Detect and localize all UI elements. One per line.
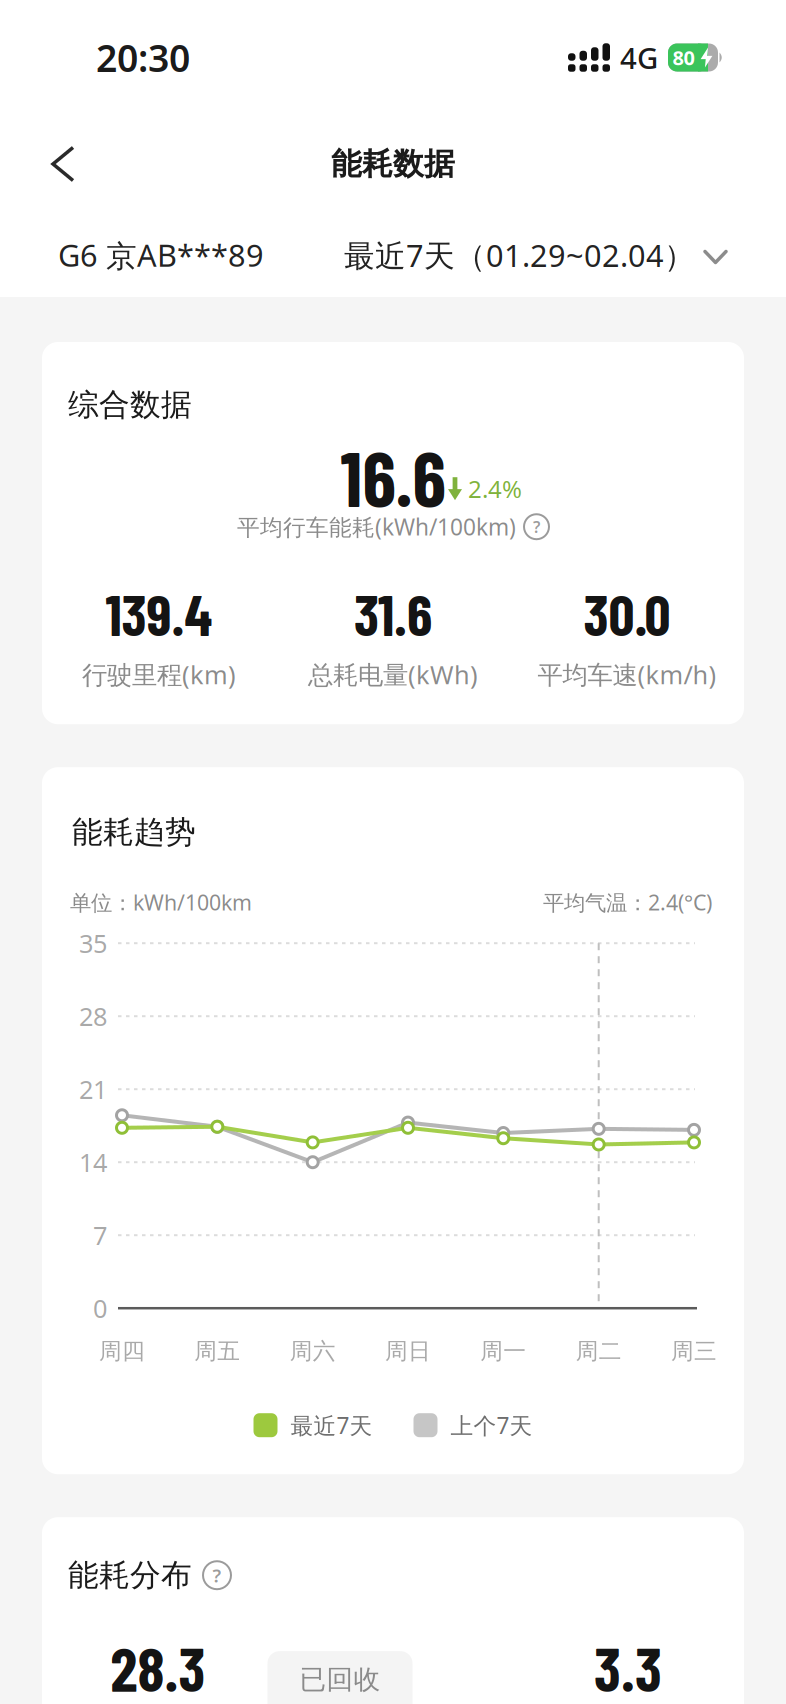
staticText: 80 [672, 44, 694, 71]
staticText: 能耗分布 [68, 1556, 192, 1594]
staticText: 28.3 [110, 1630, 205, 1704]
staticText: 上个7天 [450, 1410, 532, 1440]
staticText: 20:30 [96, 33, 190, 82]
staticText: 周五 [194, 1337, 240, 1365]
button[interactable]: Back [0, 139, 103, 188]
staticText: 单位：kWh/100km [70, 888, 252, 916]
staticText: 14 [79, 1145, 107, 1179]
staticText: 7 [93, 1218, 107, 1252]
staticText: 周三 [671, 1337, 717, 1365]
staticText: 2.4% [468, 473, 522, 505]
staticText: 30.0 [583, 579, 670, 648]
staticText: 21 [79, 1072, 107, 1106]
staticText: G6 京AB***89 [58, 235, 264, 275]
staticText: 0 [93, 1291, 107, 1325]
staticText: 平均车速(km/h) [537, 658, 716, 691]
staticText: 总耗电量(kWh) [308, 658, 478, 691]
staticText: 31.6 [354, 579, 432, 648]
staticText: 最近7天（01.29~02.04） [344, 235, 695, 275]
staticText: 3.3 [594, 1630, 662, 1704]
staticText: ? [212, 1563, 221, 1588]
staticText: 行驶里程(km) [82, 658, 236, 691]
staticText: 平均行车能耗(kWh/100km) [237, 512, 516, 542]
staticText: 最近7天 [290, 1410, 372, 1440]
staticText: ? [533, 516, 540, 537]
staticText: 139.4 [105, 579, 212, 648]
staticText: 周一 [480, 1337, 526, 1365]
staticText: 周日 [385, 1337, 431, 1365]
button[interactable]: Help [203, 1561, 231, 1589]
staticText: 周六 [290, 1337, 336, 1365]
staticText: 能耗数据 [331, 145, 455, 183]
staticText: 已回收 [299, 1663, 380, 1696]
button[interactable]: 最近7天（01.29~02.04） [344, 235, 726, 275]
staticText: 4G [620, 38, 658, 77]
staticText: 周四 [99, 1337, 145, 1365]
staticText: 综合数据 [68, 386, 192, 424]
staticText: 35 [79, 926, 107, 960]
staticText: 平均气温：2.4(°C) [543, 888, 712, 916]
staticText: 28 [79, 999, 107, 1033]
staticText: 16.6 [340, 431, 445, 522]
button[interactable]: Help [524, 514, 549, 539]
staticText: 能耗趋势 [72, 813, 196, 851]
staticText: 周二 [576, 1337, 622, 1365]
